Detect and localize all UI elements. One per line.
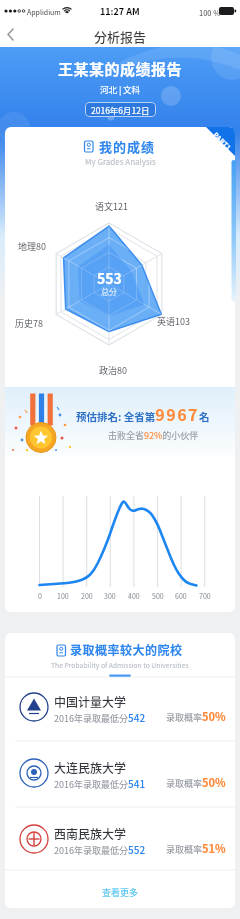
- staticText: 400: [128, 591, 140, 601]
- staticText: 553: [97, 268, 122, 288]
- staticText: 英语103: [157, 315, 190, 328]
- staticText: 录取概率50%: [166, 708, 226, 724]
- staticText: 历史78: [15, 317, 43, 330]
- staticText: The Probability of Admission to Universi…: [51, 660, 189, 670]
- staticText: 600: [175, 591, 187, 601]
- staticText: 分析报告: [94, 27, 147, 46]
- staticText: 地理80: [18, 240, 46, 253]
- staticText: 100 %: [199, 7, 221, 18]
- staticText: 中国计量大学: [54, 693, 127, 710]
- staticText: My Grades Analysis: [85, 156, 156, 168]
- staticText: 大连民族大学: [54, 759, 127, 776]
- button[interactable]: [0, 22, 40, 47]
- staticText: 2016年录取最低分541: [54, 776, 146, 790]
- staticText: 2016年录取最低分552: [54, 842, 146, 856]
- staticText: 政治80: [99, 364, 127, 377]
- staticText: 录取概率较大的院校: [70, 641, 183, 658]
- staticText: 西南民族大学: [54, 825, 127, 842]
- staticText: 100: [57, 591, 69, 601]
- button[interactable]: 查看更多: [70, 880, 170, 904]
- staticText: 300: [104, 591, 116, 601]
- button[interactable]: 2016年6月12日: [85, 102, 156, 117]
- staticText: 王某某的成绩报告: [58, 58, 183, 80]
- staticText: 预估排名: 全省第9967名: [76, 402, 210, 425]
- staticText: 2016年6月12日: [91, 104, 150, 116]
- staticText: 总分: [101, 286, 117, 298]
- staticText: 500: [152, 591, 164, 601]
- staticText: 700: [199, 591, 211, 601]
- staticText: 河北 | 文科: [100, 83, 141, 95]
- staticText: 0: [38, 591, 42, 601]
- staticText: PART1: [212, 129, 234, 151]
- button[interactable]: 中国计量大学: [5, 675, 235, 741]
- staticText: Applidium: [27, 7, 61, 17]
- staticText: 语文121: [95, 200, 128, 213]
- staticText: 录取概率51%: [166, 840, 226, 856]
- button[interactable]: 西南民族大学: [5, 807, 235, 873]
- staticText: 录取概率50%: [166, 774, 226, 790]
- staticText: 击败全省92%的小伙伴: [108, 429, 199, 442]
- staticText: 查看更多: [102, 886, 139, 899]
- staticText: 我的成绩: [99, 137, 156, 156]
- staticText: 2016年录取最低分542: [54, 710, 146, 724]
- button[interactable]: 大连民族大学: [5, 741, 235, 807]
- staticText: 11:27 AM: [100, 5, 140, 18]
- staticText: 200: [81, 591, 93, 601]
